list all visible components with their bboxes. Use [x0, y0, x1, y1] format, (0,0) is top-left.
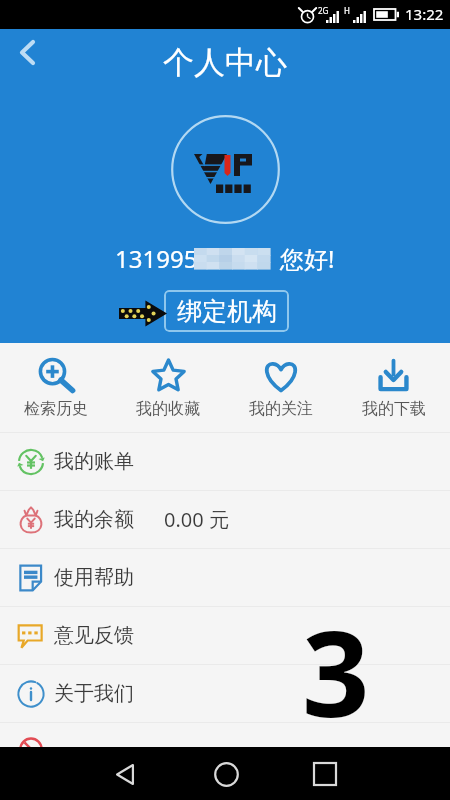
button[interactable]: 我的收藏	[112, 343, 224, 432]
staticText: H	[344, 5, 350, 16]
staticText: 意见反馈	[54, 623, 134, 648]
button[interactable]: 我的余额	[0, 491, 450, 548]
button[interactable]: 我的下载	[337, 343, 450, 432]
button[interactable]: 使用帮助	[0, 549, 450, 606]
button[interactable]: 意见反馈	[0, 607, 450, 664]
staticText: 我的账单	[54, 449, 134, 474]
staticText: 关于我们	[54, 681, 134, 706]
button[interactable]: Back	[0, 29, 54, 83]
button[interactable]: 我的关注	[224, 343, 337, 432]
staticText: 13:22	[405, 4, 444, 24]
staticText: 绑定机构	[177, 296, 277, 327]
staticText: 我的收藏	[136, 399, 200, 419]
staticText: 我的关注	[249, 399, 313, 419]
staticText: 131995	[115, 242, 198, 275]
staticText: 0.00 元	[164, 506, 229, 533]
button[interactable]: Home	[200, 748, 252, 800]
button[interactable]: Back	[99, 748, 151, 800]
staticText: 2G	[318, 5, 329, 16]
button[interactable]: 关于我们	[0, 665, 450, 722]
staticText: 我的下载	[362, 399, 426, 419]
staticText: 检索历史	[24, 399, 88, 419]
staticText: 3	[302, 591, 370, 752]
staticText: 您好!	[280, 242, 335, 275]
button[interactable]: 我的账单	[0, 433, 450, 490]
staticText: 使用帮助	[54, 565, 134, 590]
button[interactable]: 绑定机构	[164, 290, 289, 332]
staticText: 个人中心	[163, 43, 287, 82]
button[interactable]: Recents	[299, 748, 351, 800]
button[interactable]: 检索历史	[0, 343, 112, 432]
staticText: 我的余额	[54, 507, 134, 532]
